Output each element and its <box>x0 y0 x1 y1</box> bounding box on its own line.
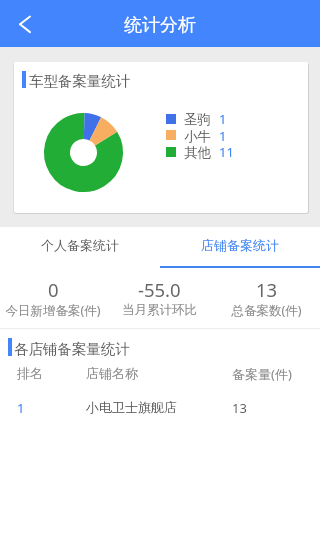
staticText: 店铺名称 <box>86 365 138 381</box>
staticText: 1 <box>17 399 25 417</box>
staticText: 圣驹 <box>184 111 211 128</box>
staticText: 当月累计环比 <box>122 302 197 318</box>
button[interactable]: 店铺备案统计 <box>160 227 320 267</box>
staticText: 车型备案量统计 <box>29 72 131 90</box>
staticText: 13 <box>256 277 278 302</box>
staticText: 1 <box>219 110 227 128</box>
staticText: 13 <box>232 399 247 417</box>
staticText: 11 <box>219 143 234 161</box>
staticText: 统计分析 <box>124 14 196 37</box>
staticText: 总备案数(件) <box>231 302 302 319</box>
button[interactable]: 个人备案统计 <box>0 227 160 267</box>
staticText: 小电卫士旗舰店 <box>86 399 177 415</box>
button[interactable]: Back <box>5 5 43 43</box>
staticText: 0 <box>48 277 59 302</box>
staticText: 1 <box>219 127 227 145</box>
button[interactable]: 1 <box>0 393 320 419</box>
staticText: -55.0 <box>138 277 181 302</box>
staticText: 小牛 <box>184 128 211 145</box>
staticText: 个人备案统计 <box>41 237 119 253</box>
staticText: 备案量(件) <box>232 365 292 381</box>
staticText: 各店铺备案量统计 <box>14 340 130 358</box>
staticText: 排名 <box>17 365 43 381</box>
staticText: 其他 <box>184 144 211 161</box>
staticText: 店铺备案统计 <box>201 237 279 253</box>
staticText: 今日新增备案(件) <box>5 302 101 319</box>
